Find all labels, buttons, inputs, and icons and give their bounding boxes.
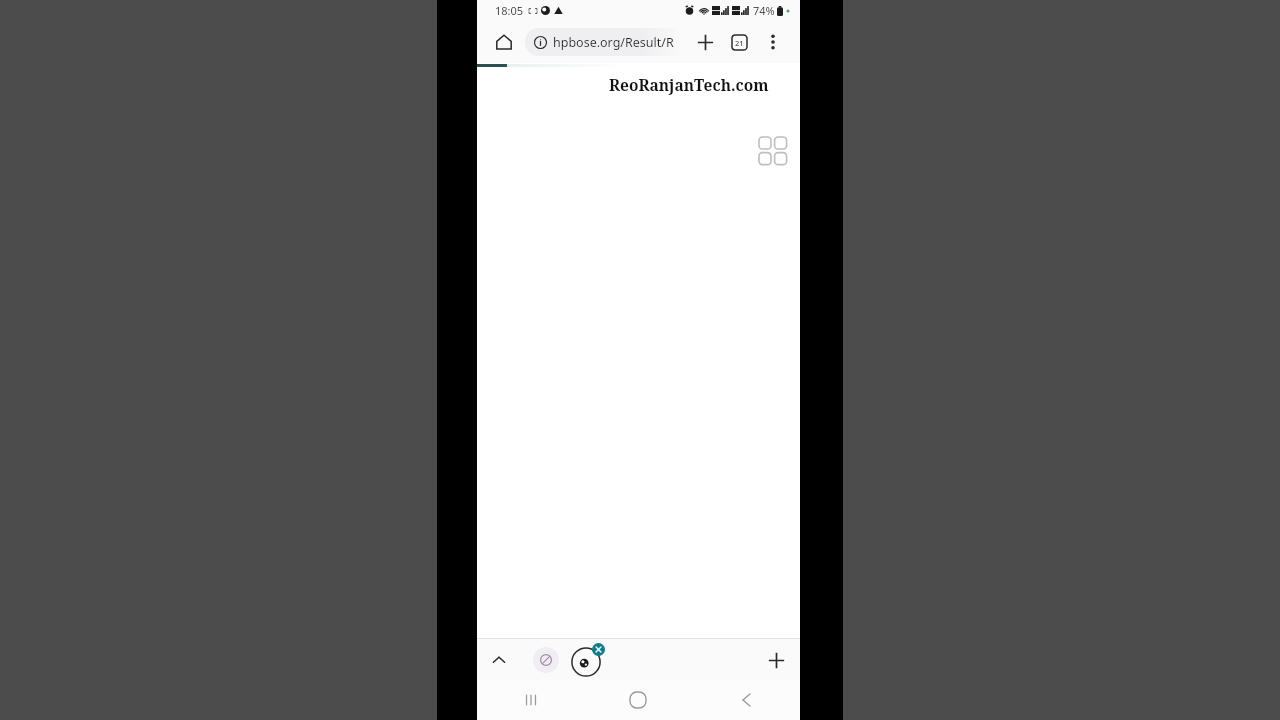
staticText: 18:05 bbox=[495, 3, 524, 18]
button[interactable]: Current tab, close bbox=[571, 643, 605, 677]
button[interactable]: New tab bbox=[690, 27, 720, 57]
button[interactable]: Previous tab bbox=[533, 647, 559, 673]
button[interactable]: More options bbox=[758, 27, 788, 57]
button[interactable]: Home bbox=[489, 27, 519, 57]
staticText: 74% bbox=[753, 3, 775, 18]
staticText: ReoRanjanTech.com bbox=[609, 74, 769, 95]
staticText: hpbose.org/Result/R bbox=[553, 34, 674, 51]
button[interactable]: hpbose.org/Result/R bbox=[525, 28, 684, 56]
button[interactable]: Home bbox=[584, 680, 692, 720]
button[interactable]: Back bbox=[692, 680, 800, 720]
button[interactable]: Apps grid bbox=[757, 135, 791, 169]
button[interactable]: Tabs, 21 open bbox=[724, 27, 754, 57]
button[interactable]: Collapse bbox=[485, 646, 513, 674]
button[interactable]: Add tab bbox=[761, 645, 791, 675]
button[interactable]: Recent apps bbox=[477, 680, 584, 720]
staticText: 21 bbox=[735, 38, 744, 48]
